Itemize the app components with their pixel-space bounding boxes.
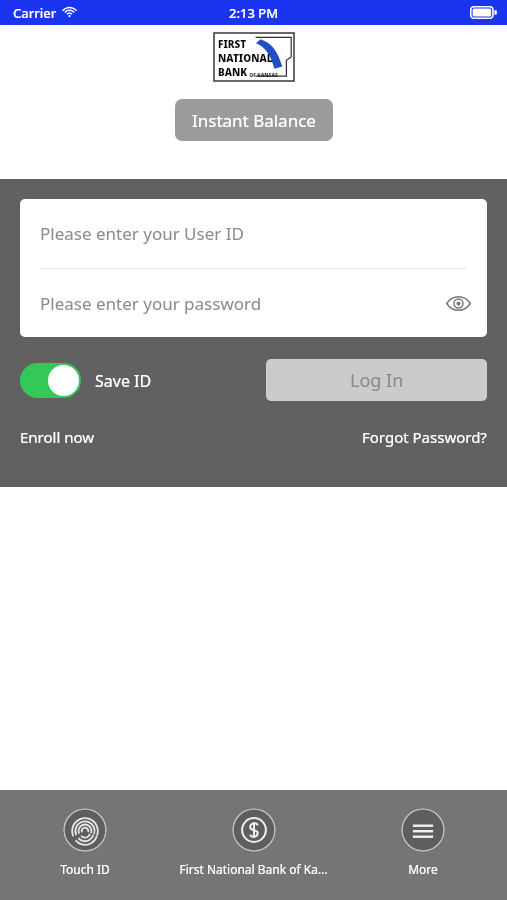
button[interactable]: First National Bank of Ka... (169, 790, 338, 877)
staticText: Touch ID (60, 861, 110, 877)
staticText: First National Bank of Ka... (179, 861, 328, 877)
button[interactable]: Please enter your User ID (20, 199, 487, 268)
staticText: NATIONAL (218, 51, 273, 65)
staticText: Forgot Password? (362, 427, 487, 447)
button[interactable]: More (338, 790, 507, 877)
button[interactable]: Touch ID (0, 790, 169, 877)
button[interactable]: Save ID (20, 363, 152, 398)
staticText: Instant Balance (192, 109, 316, 132)
staticText: Enroll now (20, 427, 95, 447)
button[interactable]: Show password (441, 286, 475, 320)
staticText: Save ID (95, 370, 152, 392)
button[interactable]: Forgot Password? (362, 427, 487, 447)
staticText: More (408, 861, 438, 877)
staticText: 2:13 PM (229, 4, 279, 22)
button[interactable]: Please enter your password (20, 269, 487, 337)
staticText: FIRST (218, 37, 247, 51)
button[interactable]: Instant Balance (175, 99, 333, 141)
staticText: Please enter your User ID (40, 222, 244, 245)
staticText: BANK (218, 65, 248, 79)
button[interactable]: Log In (266, 359, 487, 401)
staticText: OF KANSAS (248, 72, 278, 79)
button[interactable]: Enroll now (20, 427, 95, 447)
staticText: Please enter your password (40, 292, 262, 315)
staticText: Carrier (13, 4, 57, 22)
staticText: Log In (350, 368, 404, 393)
